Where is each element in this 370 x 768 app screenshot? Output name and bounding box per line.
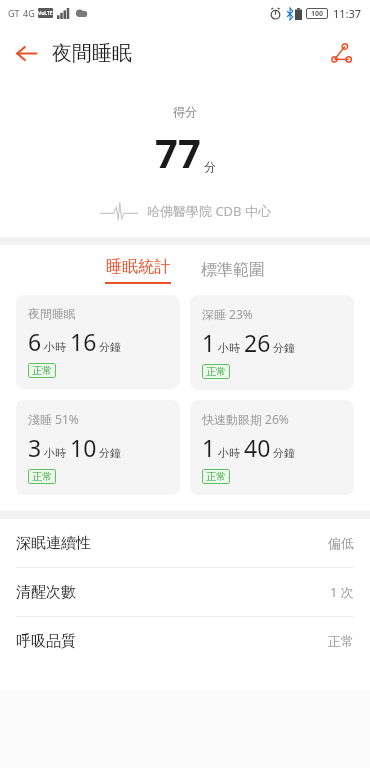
button[interactable]: Share	[322, 34, 360, 72]
staticText: 正常	[32, 470, 52, 483]
staticText: 呼吸品質	[16, 632, 76, 651]
button[interactable]: 深睡 23%	[190, 295, 354, 390]
staticText: 1 次	[330, 583, 354, 601]
button[interactable]: 標準範圍	[197, 256, 269, 284]
staticText: 標準範圍	[201, 260, 265, 280]
staticText: 夜間睡眠	[28, 306, 76, 321]
staticText: 正常	[206, 365, 226, 378]
staticText: 得分	[173, 104, 197, 119]
staticText: 深睡 23%	[202, 306, 253, 322]
staticText: 40	[244, 432, 271, 463]
button[interactable]: 呼吸品質	[0, 617, 370, 665]
staticText: 1	[202, 327, 216, 358]
staticText: 正常	[328, 633, 354, 649]
button[interactable]: 睡眠統計	[101, 257, 175, 284]
staticText: 快速動眼期 26%	[202, 411, 289, 427]
staticText: 11:37	[333, 6, 362, 21]
staticText: 分	[204, 159, 216, 174]
staticText: 哈佛醫學院 CDB 中心	[147, 202, 271, 220]
staticText: GT	[8, 7, 20, 19]
staticText: 深眠連續性	[16, 534, 91, 553]
staticText: 淺睡 51%	[28, 411, 79, 427]
button[interactable]: 夜間睡眠	[16, 295, 180, 389]
staticText: 77	[155, 125, 201, 179]
staticText: 3	[28, 432, 42, 463]
button[interactable]: 深眠連續性	[0, 519, 370, 568]
staticText: 小時	[218, 446, 240, 460]
staticText: 偏低	[328, 535, 354, 551]
staticText: 睡眠統計	[106, 257, 170, 277]
button[interactable]: 快速動眼期 26%	[190, 400, 354, 495]
staticText: 夜間睡眠	[52, 41, 132, 66]
staticText: 正常	[32, 364, 52, 377]
staticText: 分鐘	[273, 446, 295, 460]
staticText: 16	[70, 326, 97, 357]
staticText: 分鐘	[99, 340, 121, 354]
button[interactable]: Back	[8, 35, 44, 71]
staticText: 正常	[206, 470, 226, 483]
button[interactable]: 清醒次數	[0, 568, 370, 617]
staticText: 分鐘	[273, 341, 295, 355]
staticText: 小時	[44, 340, 66, 354]
staticText: VoLTE	[38, 10, 53, 17]
button[interactable]: 淺睡 51%	[16, 400, 180, 495]
staticText: 4G	[23, 7, 35, 19]
staticText: 6	[28, 326, 42, 357]
staticText: 分鐘	[99, 446, 121, 460]
staticText: 清醒次數	[16, 583, 76, 602]
staticText: 小時	[44, 446, 66, 460]
staticText: 小時	[218, 341, 240, 355]
staticText: 26	[244, 327, 271, 358]
staticText: 10	[70, 432, 97, 463]
staticText: 1	[202, 432, 216, 463]
staticText: 100	[311, 9, 324, 19]
